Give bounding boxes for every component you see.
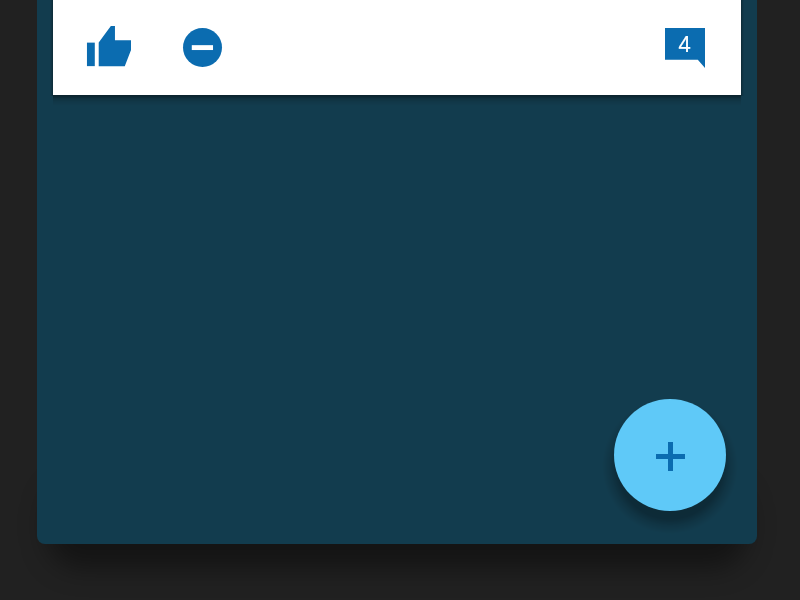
button[interactable]: Add — [614, 399, 726, 511]
button[interactable]: Like — [77, 17, 140, 80]
button[interactable]: Comments — [653, 16, 716, 79]
staticText: 4 — [678, 30, 691, 59]
button[interactable]: Block — [171, 16, 234, 79]
